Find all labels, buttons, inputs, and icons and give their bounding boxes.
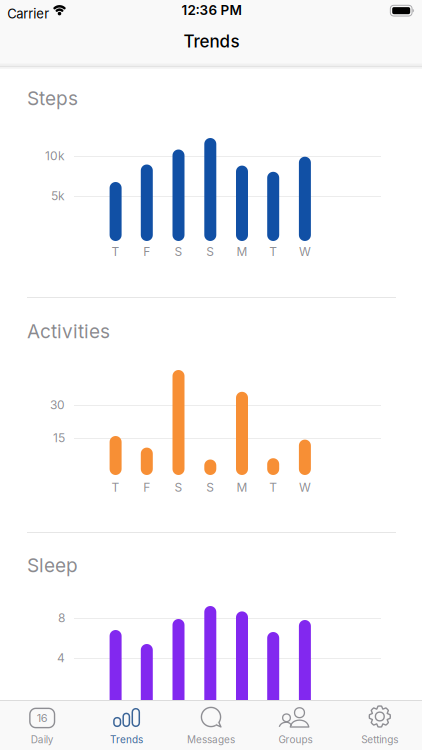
staticText: 30 [50,398,65,412]
staticText: Messages [187,734,235,746]
staticText: S [174,244,182,259]
staticText: T [269,480,277,494]
staticText: Settings [361,734,398,746]
button[interactable]: Daily [0,701,84,750]
button[interactable]: Settings [338,701,422,750]
staticText: 5k [51,189,65,203]
staticText: 12:36 PM [181,2,241,18]
staticText: Carrier [7,6,49,21]
staticText: Groups [278,734,312,746]
staticText: M [236,244,247,259]
staticText: W [299,480,311,494]
staticText: Trends [183,31,239,52]
staticText: S [206,480,214,494]
staticText: 15 [53,431,65,445]
staticText: S [206,244,214,259]
staticText: T [112,480,120,494]
staticText: Activities [27,320,110,343]
staticText: 8 [58,611,65,625]
staticText: 10k [45,149,65,163]
staticText: Steps [27,87,78,110]
staticText: Sleep [27,554,78,577]
staticText: M [236,480,247,494]
staticText: W [299,244,311,259]
button[interactable]: Messages [169,701,253,750]
staticText: Trends [110,734,143,746]
staticText: T [269,244,277,259]
staticText: S [174,480,182,494]
button[interactable]: Groups [253,701,337,750]
staticText: 4 [57,651,65,665]
staticText: T [112,244,120,259]
staticText: F [143,480,150,494]
staticText: Daily [31,734,54,746]
staticText: F [143,244,150,259]
button[interactable]: Trends [85,701,169,750]
staticText: 16 [37,711,48,725]
